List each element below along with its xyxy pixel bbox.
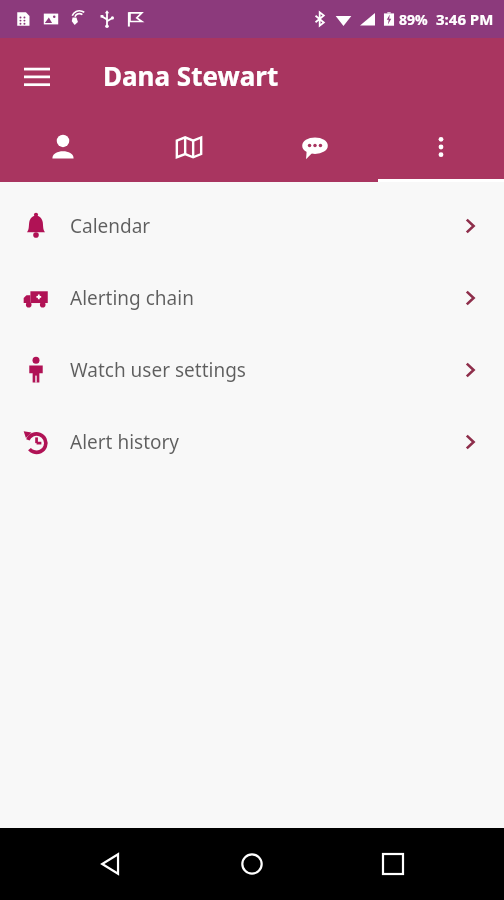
button[interactable]: Alerting chain <box>0 262 504 334</box>
button[interactable]: Alert history <box>0 406 504 478</box>
button[interactable]: Contacts <box>0 112 126 182</box>
staticText: Dana Stewart <box>103 58 279 93</box>
staticText: 3:46 PM <box>436 9 494 29</box>
button[interactable]: Map <box>126 112 252 182</box>
button[interactable]: More options <box>378 112 504 182</box>
button[interactable]: Messages <box>252 112 378 182</box>
button[interactable]: Calendar <box>0 190 504 262</box>
button[interactable]: Back <box>81 834 141 894</box>
staticText: 89% <box>399 10 428 29</box>
staticText: Alerting chain <box>70 285 194 311</box>
button[interactable]: Watch user settings <box>0 334 504 406</box>
button[interactable]: Open navigation menu <box>10 48 64 102</box>
staticText: Watch user settings <box>70 357 246 383</box>
staticText: Calendar <box>70 213 151 239</box>
button[interactable]: Home <box>222 834 282 894</box>
button[interactable]: Recent apps <box>363 834 423 894</box>
staticText: Alert history <box>70 429 180 455</box>
